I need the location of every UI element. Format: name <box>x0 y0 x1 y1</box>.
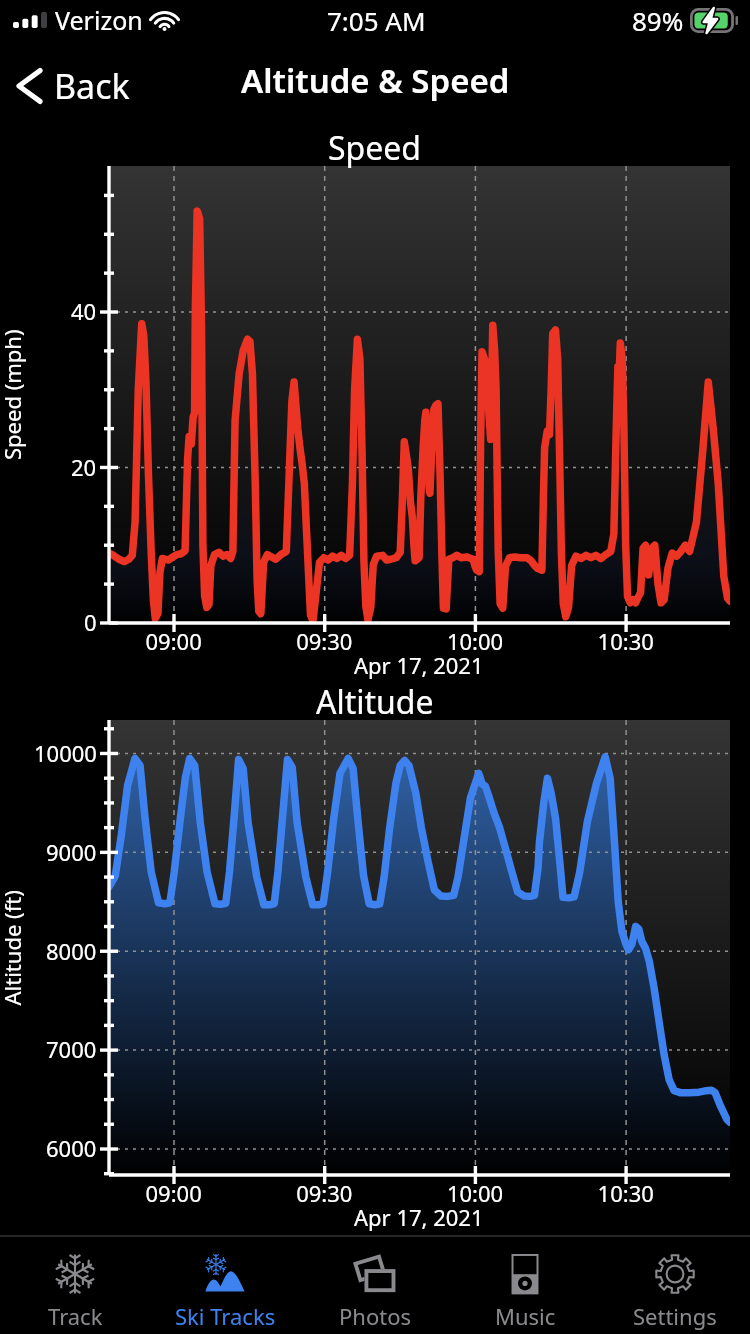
staticText: Photos <box>339 1301 412 1331</box>
button[interactable]: Ski Tracks <box>150 1237 300 1334</box>
staticText: Altitude & Speed <box>241 58 510 103</box>
button[interactable]: Back <box>0 57 148 115</box>
staticText: Settings <box>633 1301 717 1331</box>
button[interactable]: Photos <box>300 1237 450 1334</box>
staticText: Track <box>48 1301 103 1331</box>
staticText: 89% <box>632 3 684 38</box>
button[interactable]: Track <box>0 1237 150 1334</box>
staticText: Ski Tracks <box>175 1301 276 1331</box>
staticText: Verizon <box>55 3 143 37</box>
button[interactable]: Music <box>450 1237 600 1334</box>
button[interactable]: Settings <box>600 1237 750 1334</box>
staticText: 7:05 AM <box>327 3 426 38</box>
staticText: Music <box>495 1301 556 1331</box>
staticText: Back <box>54 63 130 109</box>
